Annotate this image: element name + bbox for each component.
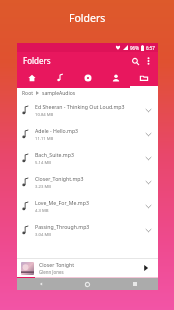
staticText: Glenn Jones [39, 269, 64, 275]
button[interactable]: Closer Tonight [17, 259, 158, 277]
button[interactable]: Artists [102, 69, 130, 86]
staticText: 6:57 [146, 45, 155, 51]
staticText: Closer Tonight [39, 261, 75, 268]
staticText: Ed Sheeran - Thinking Out Loud.mp3 [35, 103, 125, 110]
button[interactable]: Adele - Hello.mp3 [17, 122, 158, 146]
button[interactable]: Show options [142, 224, 154, 236]
button[interactable]: Show options [142, 152, 154, 164]
staticText: 10.84 MB [35, 112, 54, 118]
button[interactable]: Passing_Through.mp3 [17, 218, 158, 242]
button[interactable]: Bach_Suite.mp3 [17, 146, 158, 170]
staticText: Passing_Through.mp3 [35, 223, 90, 230]
button[interactable]: sampleAudios [42, 90, 76, 97]
button[interactable]: Home [64, 278, 111, 290]
button[interactable]: Root [22, 90, 33, 97]
button[interactable]: Back [17, 278, 64, 290]
button[interactable]: Show options [142, 128, 154, 140]
button[interactable]: Albums [74, 69, 102, 86]
button[interactable]: Home [17, 69, 46, 86]
staticText: Love_Me_For_Me.mp3 [35, 199, 89, 206]
staticText: Bach_Suite.mp3 [35, 151, 74, 158]
button[interactable]: Folders [130, 69, 158, 86]
button[interactable]: Play [139, 261, 153, 275]
staticText: Folders [69, 11, 106, 25]
staticText: Closer_Tonight.mp3 [35, 175, 84, 182]
button[interactable]: Show options [142, 104, 154, 116]
button[interactable]: Search [128, 54, 142, 68]
button[interactable]: Show options [142, 200, 154, 212]
staticText: 3.04 MB [35, 232, 51, 238]
staticText: 4.3 MB [35, 208, 49, 214]
button[interactable]: Closer_Tonight.mp3 [17, 170, 158, 194]
button[interactable]: Love_Me_For_Me.mp3 [17, 194, 158, 218]
staticText: 11.11 MB [35, 136, 54, 142]
button[interactable]: Recent apps [111, 278, 158, 290]
staticText: Adele - Hello.mp3 [35, 127, 79, 134]
staticText: 3.23 MB [35, 184, 51, 190]
staticText: Folders [23, 55, 51, 66]
button[interactable]: Songs [46, 69, 74, 86]
button[interactable]: Ed Sheeran - Thinking Out Loud.mp3 [17, 98, 158, 122]
staticText: 96% [130, 45, 139, 51]
staticText: 5.14 MB [35, 160, 51, 166]
button[interactable]: More options [142, 55, 154, 67]
button[interactable]: Show options [142, 176, 154, 188]
